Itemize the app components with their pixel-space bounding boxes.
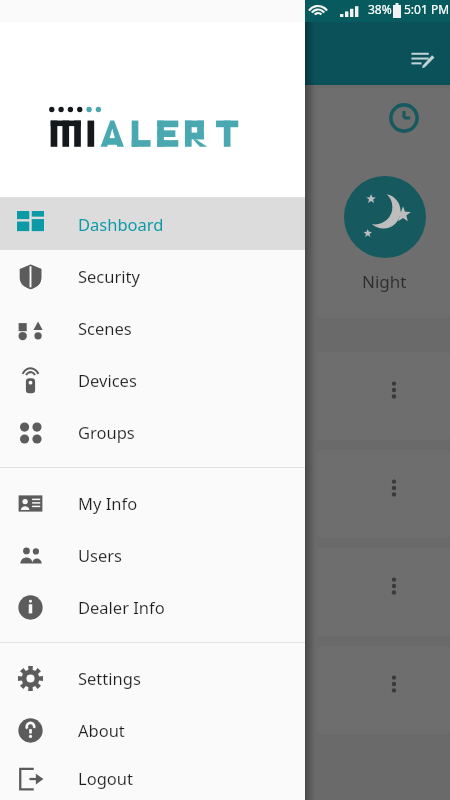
button[interactable]: Groups — [0, 406, 305, 458]
button[interactable]: Settings — [0, 652, 305, 704]
button[interactable]: Logout — [0, 756, 305, 800]
button[interactable]: More options — [378, 472, 410, 504]
button[interactable]: Devices — [0, 354, 305, 406]
other: Schedule — [386, 100, 422, 136]
staticText: About — [78, 719, 125, 741]
button[interactable]: Edit — [402, 40, 442, 80]
staticText: My Info — [78, 492, 138, 514]
staticText: Devices — [78, 369, 137, 391]
button[interactable]: About — [0, 704, 305, 756]
staticText: Scenes — [78, 317, 132, 339]
button[interactable]: More options — [378, 374, 410, 406]
button[interactable]: Scenes — [0, 302, 305, 354]
staticText: Dealer Info — [78, 596, 165, 618]
button[interactable]: My Info — [0, 477, 305, 529]
staticText: Users — [78, 544, 122, 566]
staticText: Night — [362, 270, 407, 293]
staticText: Groups — [78, 421, 135, 443]
staticText: Settings — [78, 667, 141, 689]
button[interactable]: More options — [378, 668, 410, 700]
button[interactable]: More options — [378, 570, 410, 602]
button[interactable]: Users — [0, 529, 305, 581]
staticText: Dashboard — [78, 213, 164, 235]
staticText: Logout — [78, 767, 133, 789]
staticText: 5:01 PM — [404, 1, 450, 17]
button[interactable]: Dashboard — [0, 198, 305, 250]
staticText: 38% — [368, 1, 392, 17]
staticText: Security — [78, 265, 140, 287]
button[interactable]: Security — [0, 250, 305, 302]
button[interactable]: Dealer Info — [0, 581, 305, 633]
button[interactable]: Schedule — [318, 88, 450, 318]
